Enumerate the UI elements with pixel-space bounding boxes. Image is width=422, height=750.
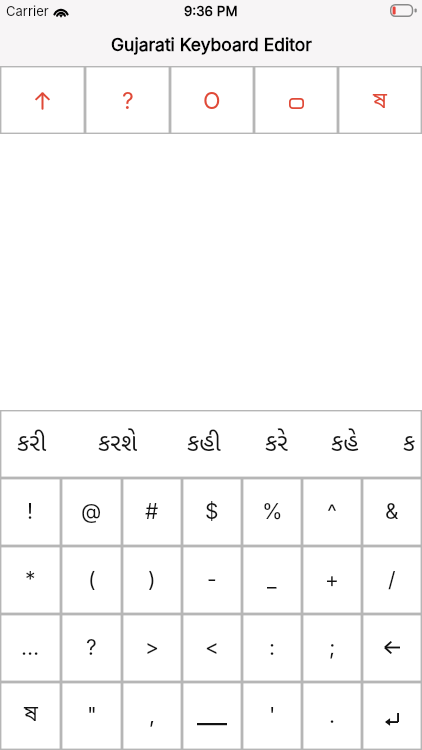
staticText: ( [88, 567, 96, 592]
button[interactable]: Key + [302, 546, 362, 614]
button[interactable]: Key . [302, 682, 362, 750]
staticText: : [269, 635, 276, 660]
staticText: > [145, 635, 159, 660]
button[interactable]: Key " [61, 682, 122, 750]
button[interactable]: કરી [17, 428, 47, 461]
button[interactable]: કરશે [98, 428, 138, 461]
button[interactable]: Key … [0, 614, 61, 682]
staticText: ষ [24, 701, 38, 730]
button[interactable]: કહે [331, 428, 359, 461]
button[interactable]: Key ! [0, 478, 61, 546]
button[interactable]: કહી [187, 428, 221, 461]
staticText: કહે [331, 425, 359, 458]
button[interactable]: Key % [242, 478, 302, 546]
staticText: કરશે [98, 425, 138, 458]
button[interactable]: Key - [182, 546, 242, 614]
staticText: & [385, 499, 399, 524]
staticText: $ [205, 499, 219, 524]
staticText: ? [86, 635, 97, 660]
button[interactable]: Key ← [362, 614, 422, 682]
button[interactable]: Key > [122, 614, 182, 682]
button[interactable]: Key ষ [0, 682, 61, 750]
staticText: … [21, 635, 40, 660]
staticText: Gujarati Keyboard Editor [111, 34, 312, 55]
button[interactable]: Key @ [61, 478, 122, 546]
staticText: ? [122, 87, 134, 115]
button[interactable]: Key ) [122, 546, 182, 614]
button[interactable]: Letter O [170, 66, 254, 134]
button[interactable]: Question mark [85, 66, 170, 134]
button[interactable]: Key < [182, 614, 242, 682]
staticText: 9:36 PM [184, 3, 238, 19]
staticText: + [325, 567, 339, 592]
staticText: કહી [187, 425, 221, 458]
staticText: ! [27, 499, 34, 524]
staticText: O [203, 87, 221, 115]
button[interactable]: Key ? [61, 614, 122, 682]
staticText: ) [148, 567, 156, 592]
staticText: કરે [265, 425, 288, 458]
button[interactable]: Key , [122, 682, 182, 750]
button[interactable]: Key / [362, 546, 422, 614]
button[interactable]: Key ' [242, 682, 302, 750]
button[interactable]: Key ↵ [362, 682, 422, 750]
staticText: # [145, 499, 159, 524]
staticText: @ [81, 499, 102, 524]
button[interactable]: Key ^ [302, 478, 362, 546]
button[interactable]: Move up [0, 66, 85, 134]
button[interactable]: Key ( [61, 546, 122, 614]
staticText: Carrier [6, 3, 49, 19]
staticText: , [149, 703, 156, 728]
staticText: " [87, 703, 97, 728]
staticText: _ [267, 567, 277, 592]
button[interactable]: Key _ [242, 546, 302, 614]
button[interactable]: Key : [242, 614, 302, 682]
staticText: - [207, 567, 217, 592]
button[interactable]: Key ; [302, 614, 362, 682]
button[interactable]: Key —— [182, 682, 242, 750]
staticText: ' [269, 703, 276, 728]
staticText: % [262, 499, 283, 524]
button[interactable]: Key # [122, 478, 182, 546]
button[interactable]: Key & [362, 478, 422, 546]
button[interactable]: Key $ [182, 478, 242, 546]
button[interactable]: Key * [0, 546, 61, 614]
staticText: / [388, 567, 396, 592]
staticText: . [329, 703, 336, 728]
button[interactable]: કરે [265, 428, 288, 461]
staticText: ^ [327, 499, 337, 524]
button[interactable]: Character [338, 66, 422, 134]
staticText: કરી [17, 425, 47, 458]
staticText: ষ [373, 88, 387, 117]
staticText: * [25, 567, 36, 592]
staticText: ; [329, 635, 336, 660]
staticText: < [205, 635, 219, 660]
button[interactable]: Rectangle [254, 66, 338, 134]
